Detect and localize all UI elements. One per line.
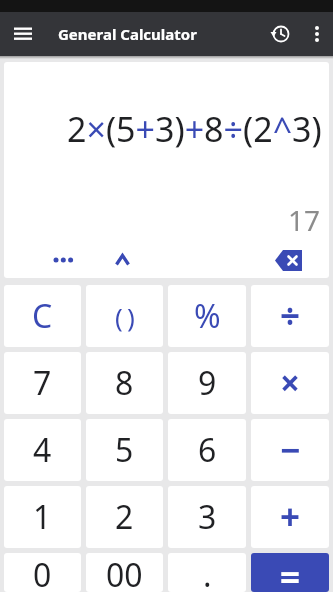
button[interactable]: = [251, 553, 329, 592]
staticText: 6 [198, 428, 217, 472]
button[interactable]: . [168, 553, 246, 592]
button[interactable]: 3 [168, 486, 246, 548]
button[interactable]: − [251, 419, 329, 481]
button[interactable]: 9 [168, 352, 246, 414]
staticText: 1 [33, 495, 52, 539]
button[interactable]: ( ) [86, 285, 163, 347]
staticText: ( ) [115, 299, 135, 334]
button[interactable]: 2 [86, 486, 163, 548]
button[interactable]: C [4, 285, 81, 347]
staticText: 7 [33, 361, 52, 405]
staticText: + [280, 493, 301, 541]
button[interactable] [47, 248, 81, 272]
staticText: 2×(5+3)+8÷(2^3) [67, 106, 322, 152]
button[interactable] [261, 14, 301, 54]
button[interactable]: + [251, 486, 329, 548]
button[interactable]: 1 [4, 486, 81, 548]
staticText: 9 [198, 361, 217, 405]
staticText: General Calculator [58, 24, 261, 44]
staticText: C [32, 294, 53, 338]
staticText: = [280, 553, 301, 592]
button[interactable]: % [168, 285, 246, 347]
button[interactable] [0, 12, 46, 56]
staticText: 17 [288, 201, 321, 239]
staticText: 4 [33, 428, 52, 472]
button[interactable]: 5 [86, 419, 163, 481]
button[interactable]: 4 [4, 419, 81, 481]
button[interactable] [301, 12, 333, 56]
staticText: × [280, 359, 301, 407]
staticText: − [280, 426, 301, 474]
button[interactable]: ÷ [251, 285, 329, 347]
button[interactable]: 7 [4, 352, 81, 414]
staticText: ÷ [280, 292, 301, 340]
staticText: 2 [115, 495, 134, 539]
staticText: 8 [115, 361, 134, 405]
button[interactable]: 0 [4, 553, 81, 592]
staticText: % [194, 294, 221, 338]
staticText: 00 [106, 553, 143, 592]
button[interactable]: 00 [86, 553, 163, 592]
button[interactable]: × [251, 352, 329, 414]
button[interactable] [105, 248, 139, 272]
staticText: 3 [198, 495, 217, 539]
button[interactable] [272, 248, 306, 272]
button[interactable]: 6 [168, 419, 246, 481]
staticText: 0 [33, 553, 52, 592]
staticText: . [203, 553, 212, 592]
staticText: 5 [115, 428, 134, 472]
button[interactable]: 8 [86, 352, 163, 414]
